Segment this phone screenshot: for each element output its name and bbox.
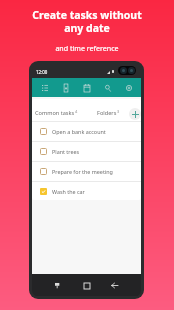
- staticText: Create tasks without any date: [32, 8, 142, 35]
- button[interactable]: Folders: [97, 109, 120, 117]
- button[interactable]: Plant trees: [32, 142, 141, 161]
- button[interactable]: Calendar: [78, 79, 95, 96]
- button[interactable]: Open a bank account: [32, 122, 141, 141]
- button[interactable]: Add task: [129, 108, 141, 120]
- button[interactable]: Tasks: [36, 79, 53, 96]
- staticText: Folders: [97, 109, 117, 117]
- button[interactable]: Recents: [51, 278, 66, 293]
- staticText: Plant trees: [52, 148, 80, 155]
- button[interactable]: Home: [79, 278, 94, 293]
- staticText: 3: [117, 109, 120, 114]
- staticText: 4: [75, 109, 78, 114]
- staticText: Wash the car: [52, 188, 85, 195]
- button[interactable]: Common tasks: [35, 109, 78, 117]
- staticText: 12:00: [36, 69, 48, 75]
- button[interactable]: Settings: [120, 79, 137, 96]
- staticText: Open a bank account: [52, 128, 106, 135]
- button[interactable]: Wash the car: [32, 182, 141, 200]
- button[interactable]: Prepare for the meeting: [32, 162, 141, 181]
- staticText: Common tasks: [35, 109, 75, 117]
- staticText: and time reference: [55, 43, 119, 53]
- button[interactable]: New note: [57, 79, 74, 96]
- button[interactable]: Search: [99, 79, 116, 96]
- button[interactable]: Back: [107, 278, 122, 293]
- staticText: Prepare for the meeting: [52, 168, 113, 175]
